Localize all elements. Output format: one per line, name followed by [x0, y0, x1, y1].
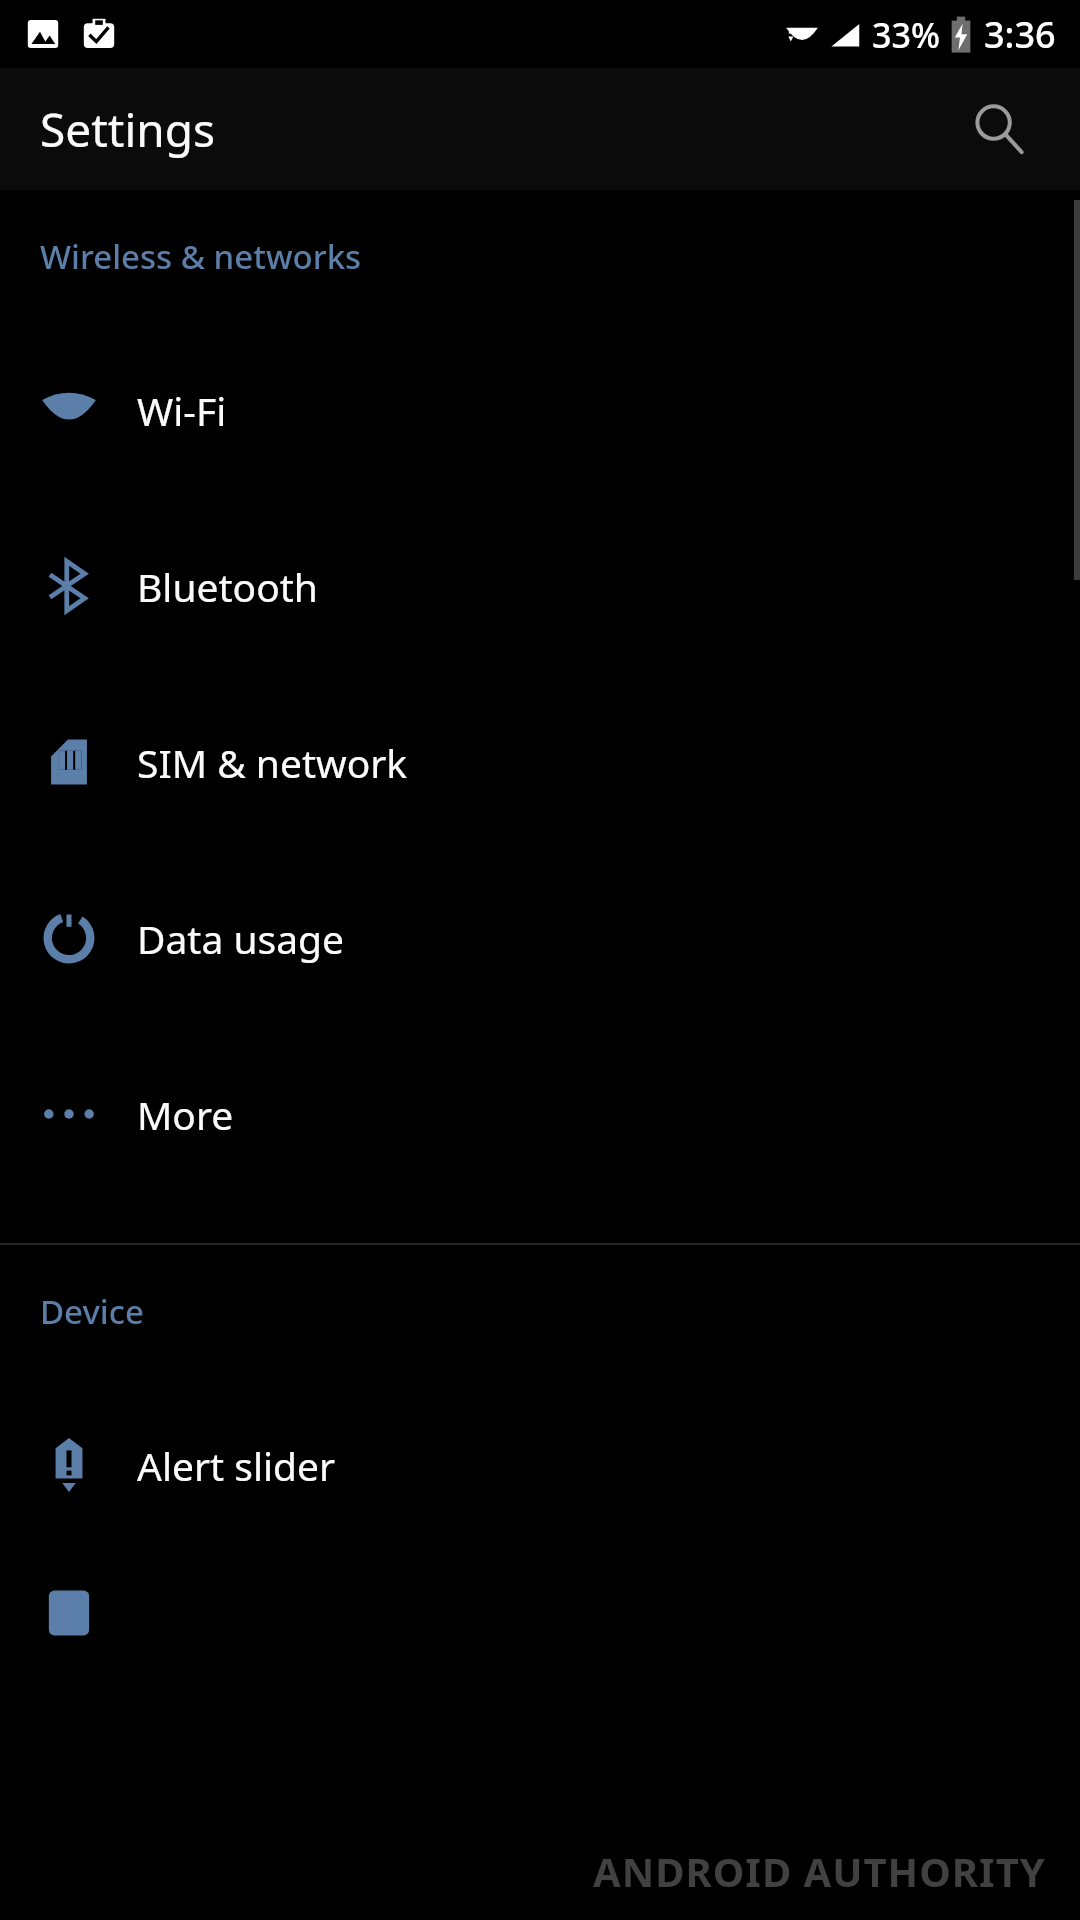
- staticText: Data usage: [137, 912, 345, 965]
- button[interactable]: Wi-Fi: [0, 322, 1080, 498]
- staticText: SIM & network: [137, 736, 408, 789]
- staticText: More: [137, 1088, 234, 1141]
- staticText: Settings: [40, 98, 216, 161]
- button[interactable]: Bluetooth: [0, 498, 1080, 674]
- button[interactable]: More: [0, 1026, 1080, 1202]
- staticText: Alert slider: [137, 1439, 336, 1492]
- staticText: Wireless & networks: [40, 234, 362, 279]
- button[interactable]: SIM & network: [0, 674, 1080, 850]
- button[interactable]: [0, 1553, 1080, 1673]
- staticText: Device: [40, 1289, 144, 1334]
- button[interactable]: Search: [954, 84, 1044, 174]
- staticText: 33%: [872, 12, 940, 58]
- staticText: 3:36: [984, 10, 1056, 59]
- staticText: Wi-Fi: [137, 384, 227, 437]
- button[interactable]: Data usage: [0, 850, 1080, 1026]
- staticText: Bluetooth: [137, 560, 318, 613]
- staticText: ANDROID AUTHORITY: [593, 1844, 1046, 1898]
- button[interactable]: Alert slider: [0, 1377, 1080, 1553]
